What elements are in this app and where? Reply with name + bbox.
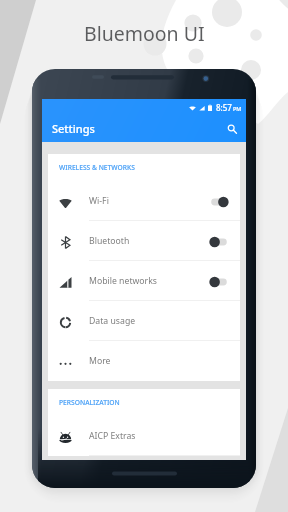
staticText: PM [233, 105, 242, 112]
staticText: Settings [52, 121, 95, 136]
staticText: More [89, 355, 111, 367]
staticText: 8:57 [216, 102, 232, 113]
staticText: Mobile networks [89, 275, 157, 287]
staticText: Wi-Fi [89, 195, 109, 207]
button[interactable]: Wi-Fi [48, 181, 240, 221]
button[interactable]: Search [222, 119, 242, 139]
button[interactable]: Bluetooth [48, 221, 240, 261]
staticText: Data usage [89, 315, 136, 327]
button[interactable]: AICP Extras [48, 416, 240, 456]
staticText: WIRELESS & NETWORKS [59, 163, 135, 172]
button[interactable]: More [48, 341, 240, 381]
button[interactable]: Data usage [48, 301, 240, 341]
staticText: Bluemoon UI [84, 20, 205, 47]
staticText: AICP Extras [89, 430, 136, 442]
staticText: Bluetooth [89, 235, 130, 247]
staticText: PERSONALIZATION [59, 398, 120, 407]
button[interactable]: Mobile networks [48, 261, 240, 301]
